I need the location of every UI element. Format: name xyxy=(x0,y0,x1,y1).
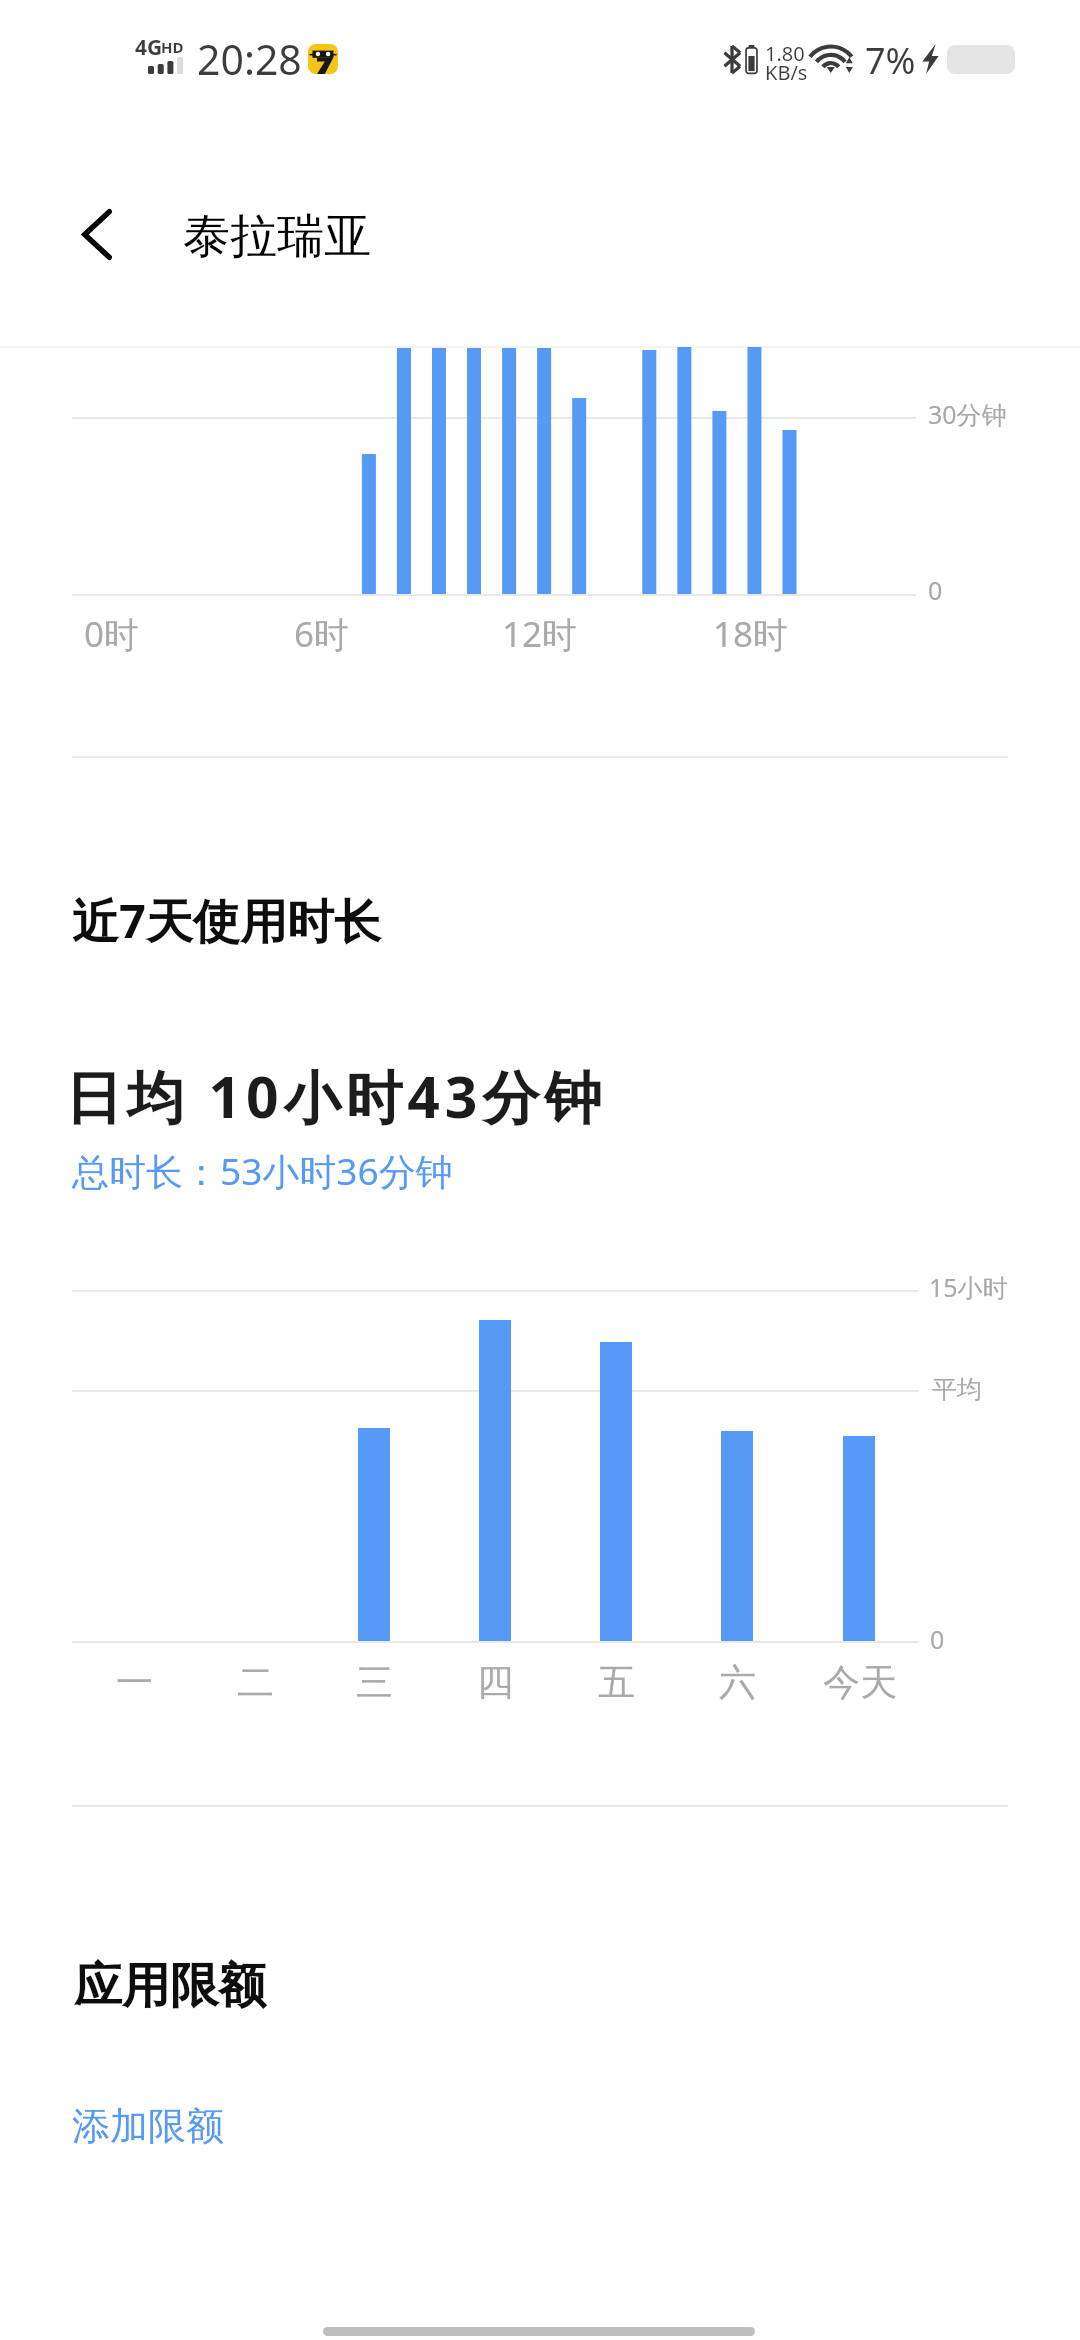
staticText: 三 xyxy=(356,1659,393,1706)
staticText: HD xyxy=(161,37,184,57)
staticText: 泰拉瑞亚 xyxy=(183,207,371,266)
staticText: 15小时 xyxy=(929,1270,1008,1304)
staticText: 一 xyxy=(116,1659,153,1706)
staticText: 7% xyxy=(865,36,916,85)
staticText: 六 xyxy=(719,1659,756,1706)
staticText: 平均 xyxy=(932,1374,982,1405)
button[interactable]: 添加限额 xyxy=(72,2072,1008,2182)
staticText: KB/s xyxy=(765,59,808,86)
staticText: 今天 xyxy=(823,1659,897,1706)
staticText: 总时长：53小时36分钟 xyxy=(72,1145,453,1196)
staticText: 12时 xyxy=(502,610,578,658)
staticText: 1.80 xyxy=(765,40,805,67)
staticText: 6时 xyxy=(294,610,350,658)
staticText: 20:28 xyxy=(197,31,302,87)
staticText: 0时 xyxy=(84,610,140,658)
staticText: 近7天使用时长 xyxy=(72,888,381,952)
staticText: 添加限额 xyxy=(72,2102,224,2150)
staticText: 应用限额 xyxy=(74,1956,266,2016)
staticText: 0 xyxy=(930,1622,945,1656)
staticText: 四 xyxy=(477,1659,514,1706)
button[interactable]: Back xyxy=(45,182,149,286)
staticText: 0 xyxy=(928,573,943,607)
staticText: 五 xyxy=(598,1659,635,1706)
staticText: 二 xyxy=(237,1659,274,1706)
staticText: 日均 10小时43分钟 xyxy=(65,1057,607,1135)
staticText: 18时 xyxy=(713,610,789,658)
staticText: 30分钟 xyxy=(928,397,1007,431)
staticText: 4G xyxy=(135,33,163,62)
